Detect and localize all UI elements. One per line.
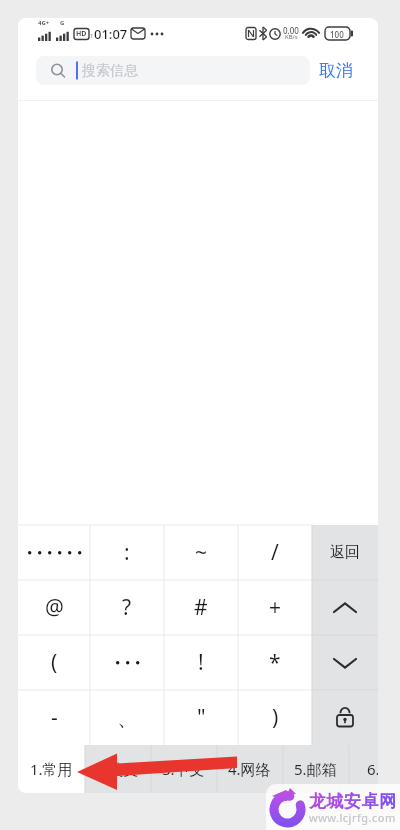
- button[interactable]: 4.网络: [216, 745, 282, 793]
- staticText: (: [51, 648, 58, 677]
- button[interactable]: [312, 690, 378, 743]
- staticText: 0.00: [283, 25, 299, 36]
- staticText: ~: [195, 538, 208, 567]
- button[interactable]: 1.常用: [18, 745, 84, 793]
- button[interactable]: 5.邮箱: [282, 745, 348, 793]
- button[interactable]: 取消: [314, 56, 358, 85]
- staticText: 1.常用: [30, 759, 73, 779]
- button[interactable]: #: [164, 580, 238, 635]
- staticText: 返回: [330, 543, 360, 562]
- button[interactable]: ~: [164, 525, 238, 580]
- button[interactable]: -: [18, 690, 90, 745]
- staticText: 5.邮箱: [294, 759, 337, 779]
- button[interactable]: :: [90, 525, 164, 580]
- staticText: G: [60, 19, 65, 27]
- button[interactable]: 3.中文: [150, 745, 216, 793]
- button[interactable]: 2.英文: [84, 745, 150, 793]
- button[interactable]: [18, 525, 90, 580]
- button[interactable]: [90, 635, 164, 690]
- staticText: 01:07: [94, 25, 128, 43]
- staticText: ": [197, 703, 206, 732]
- button[interactable]: ": [164, 690, 238, 745]
- staticText: 2.英文: [96, 759, 139, 779]
- button[interactable]: [312, 580, 378, 635]
- staticText: 100: [330, 29, 344, 40]
- staticText: KB/s: [285, 33, 298, 41]
- staticText: 龙城安卓网: [309, 791, 397, 812]
- button[interactable]: +: [238, 580, 312, 635]
- staticText: 4.网络: [228, 759, 271, 779]
- staticText: 6.数学: [367, 759, 378, 779]
- staticText: !: [198, 648, 204, 677]
- staticText: 4G+: [38, 19, 50, 27]
- button[interactable]: @: [18, 580, 90, 635]
- button[interactable]: (: [18, 635, 90, 690]
- staticText: *: [269, 648, 281, 677]
- staticText: www.lcjrfg.com: [309, 810, 396, 825]
- staticText: ?: [122, 593, 132, 622]
- button[interactable]: 6.数学: [355, 745, 378, 793]
- staticText: HD: [76, 29, 87, 39]
- button[interactable]: ): [238, 690, 312, 745]
- staticText: /: [271, 538, 279, 567]
- staticText: 1: [90, 32, 94, 40]
- button[interactable]: !: [164, 635, 238, 690]
- button[interactable]: [312, 635, 378, 690]
- staticText: #: [194, 593, 208, 622]
- button[interactable]: 返回: [312, 525, 378, 580]
- staticText: ): [272, 703, 279, 732]
- staticText: @: [45, 593, 64, 622]
- button[interactable]: 、: [90, 690, 164, 745]
- button[interactable]: 搜索信息: [36, 56, 310, 85]
- button[interactable]: ?: [90, 580, 164, 635]
- staticText: -: [51, 703, 58, 732]
- button[interactable]: /: [238, 525, 312, 580]
- staticText: 3.中文: [162, 759, 205, 779]
- staticText: :: [124, 538, 130, 567]
- staticText: 、: [117, 705, 138, 731]
- staticText: +: [269, 593, 282, 622]
- staticText: 搜索信息: [82, 62, 138, 80]
- staticText: 取消: [319, 60, 353, 81]
- button[interactable]: *: [238, 635, 312, 690]
